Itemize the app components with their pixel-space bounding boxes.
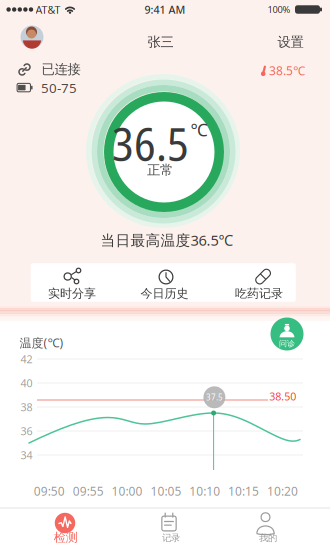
staticText: ℃ [190, 118, 207, 141]
staticText: 37.5 [206, 392, 223, 403]
staticText: 温度(℃) [19, 335, 63, 351]
staticText: 36 [20, 424, 32, 438]
staticText: 38 [20, 400, 32, 414]
button[interactable]: 我的 [222, 508, 312, 550]
staticText: 10:20 [267, 483, 298, 499]
staticText: 09:55 [73, 483, 104, 499]
staticText: 10:15 [228, 483, 259, 499]
staticText: 10:00 [112, 483, 143, 499]
staticText: 检测 [54, 530, 78, 545]
staticText: 吃药记录 [235, 286, 283, 301]
staticText: 09:50 [34, 483, 65, 499]
button[interactable]: 检测 [20, 508, 110, 550]
button[interactable]: 头像 [20, 25, 43, 48]
button[interactable]: 今日历史 [123, 263, 205, 301]
staticText: 设置 [277, 34, 303, 50]
staticText: 100% [267, 3, 290, 16]
staticText: 34 [20, 448, 32, 462]
button[interactable]: 实时分享 [31, 263, 113, 301]
staticText: AT&T [35, 2, 60, 17]
staticText: 38.5℃ [269, 63, 305, 78]
staticText: 36.5 [112, 112, 189, 175]
staticText: 我的 [259, 532, 277, 544]
staticText: 正常 [147, 162, 173, 178]
staticText: 38.50 [269, 389, 296, 403]
staticText: 40 [20, 376, 32, 390]
button[interactable]: 记录 [120, 508, 210, 550]
staticText: 10:05 [150, 483, 181, 499]
button[interactable]: 吃药记录 [218, 263, 300, 301]
staticText: 实时分享 [48, 286, 96, 301]
staticText: 9:41 AM [144, 2, 185, 17]
staticText: 已连接 [41, 61, 80, 78]
button[interactable]: 设置 [277, 34, 303, 50]
staticText: 记录 [162, 532, 180, 544]
staticText: 10:10 [189, 483, 220, 499]
button[interactable]: 问诊 [270, 317, 303, 350]
staticText: 问诊 [279, 339, 295, 348]
staticText: 今日历史 [140, 286, 188, 301]
staticText: 50-75 [41, 79, 77, 97]
staticText: 42 [20, 352, 32, 366]
staticText: 当日最高温度36.5℃ [100, 230, 233, 250]
staticText: 张三 [147, 34, 173, 50]
